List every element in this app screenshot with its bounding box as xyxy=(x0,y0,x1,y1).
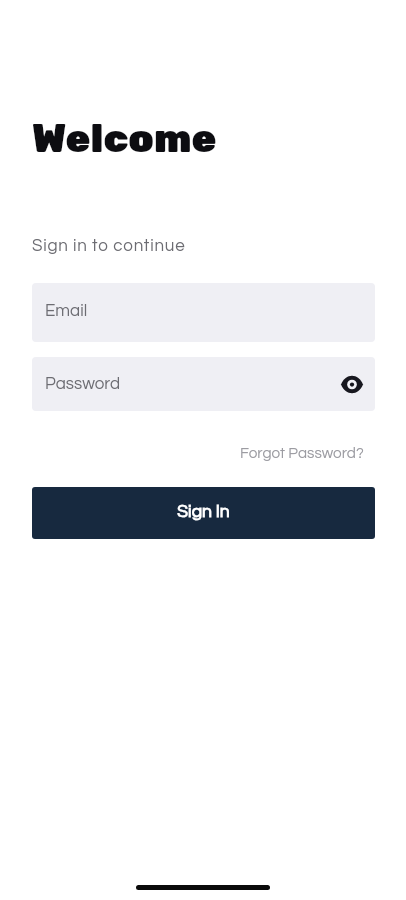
button[interactable]: Forgot Password? xyxy=(232,437,372,469)
staticText: Sign In xyxy=(177,503,230,521)
button[interactable]: Show password xyxy=(339,371,365,397)
staticText: Forgot Password? xyxy=(240,445,364,461)
staticText: Email xyxy=(45,302,88,320)
staticText: Welcome xyxy=(32,115,217,162)
button[interactable]: Password xyxy=(32,357,375,411)
staticText: Password xyxy=(45,375,121,393)
button[interactable]: Email xyxy=(32,283,375,342)
button[interactable]: Sign In xyxy=(32,487,375,539)
staticText: Sign in to continue xyxy=(32,237,186,255)
